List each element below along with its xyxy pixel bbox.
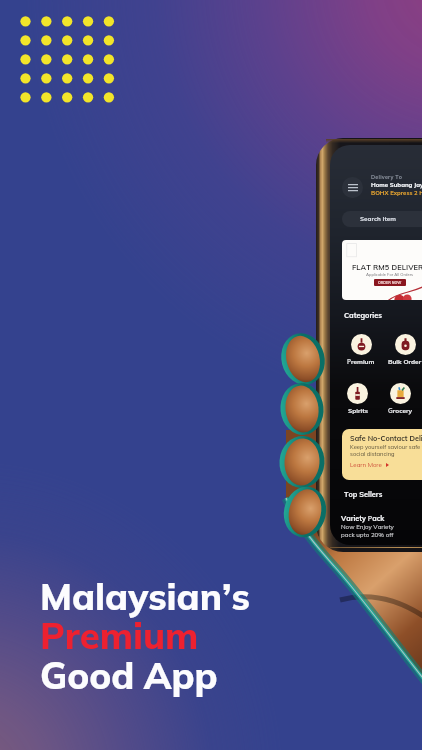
staticText: Delivery To (371, 174, 403, 181)
staticText: Variety Pack (341, 513, 385, 523)
staticText: Malaysian’s (40, 573, 250, 619)
staticText: ORDER NOW (378, 280, 402, 285)
staticText: Safe No-Contact Delivery (350, 434, 422, 443)
button[interactable]: Learn More (350, 461, 389, 469)
button[interactable]: FLAT RM5 DELIVERY (342, 240, 422, 300)
button[interactable]: Spirits (347, 383, 368, 414)
staticText: Premium (40, 612, 199, 658)
staticText: Good App (40, 650, 218, 700)
staticText: FLAT RM5 DELIVERY (352, 263, 422, 272)
staticText: Bulk Order (388, 357, 422, 365)
staticText: Premium (347, 357, 375, 366)
staticText: Grocery (388, 406, 413, 415)
staticText: Learn More (350, 461, 382, 469)
staticText: Applicable For All Orders (366, 272, 414, 277)
staticText: BOHX Express 2 Hour (371, 189, 422, 197)
button[interactable]: Bulk Order (388, 334, 422, 365)
button[interactable]: Menu (342, 177, 363, 198)
button[interactable]: Safe No-Contact Delivery (342, 429, 422, 480)
staticText: Keep yourself saviour safe with social d… (350, 443, 422, 458)
staticText: Now Enjoy Variety pack upto 20% off (341, 523, 394, 539)
staticText: Categories (344, 311, 383, 320)
staticText: Search Item (360, 215, 396, 223)
staticText: Top Sellers (344, 490, 383, 499)
button[interactable]: Search Item (342, 211, 422, 227)
button[interactable]: Grocery (388, 383, 413, 415)
staticText: Spirits (348, 406, 368, 414)
button[interactable]: Premium (347, 334, 375, 366)
staticText: Home Subang Jaya (371, 181, 422, 189)
